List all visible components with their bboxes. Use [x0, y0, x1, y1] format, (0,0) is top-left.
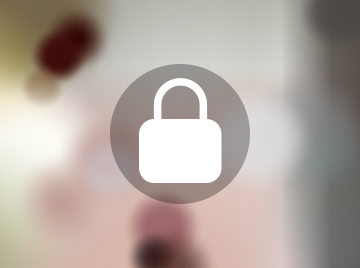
button[interactable]: Unlock: [0, 0, 360, 268]
